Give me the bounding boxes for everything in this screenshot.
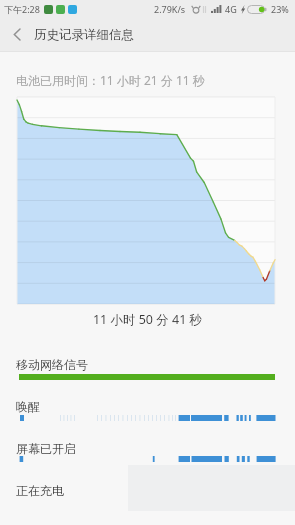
staticText: 屏幕已开启 [16, 441, 76, 456]
staticText: 11 小时 50 分 41 秒 [0, 311, 295, 328]
staticText: 23% [271, 3, 289, 15]
staticText: 历史记录详细信息 [34, 27, 134, 43]
button[interactable]: 移动网络信号 [0, 357, 295, 372]
button[interactable]: 唤醒 [0, 399, 295, 414]
staticText: 移动网络信号 [16, 357, 88, 372]
staticText: 2.79K/s [154, 3, 186, 15]
button[interactable]: 正在充电 [16, 483, 64, 498]
staticText: 电池已用时间：11 小时 21 分 11 秒 [16, 72, 205, 88]
button[interactable]: 屏幕已开启 [0, 441, 295, 456]
staticText: 唤醒 [16, 399, 40, 414]
staticText: 4G [225, 3, 237, 15]
button[interactable]: Back [0, 18, 34, 51]
staticText: 下午2:28 [4, 3, 40, 15]
